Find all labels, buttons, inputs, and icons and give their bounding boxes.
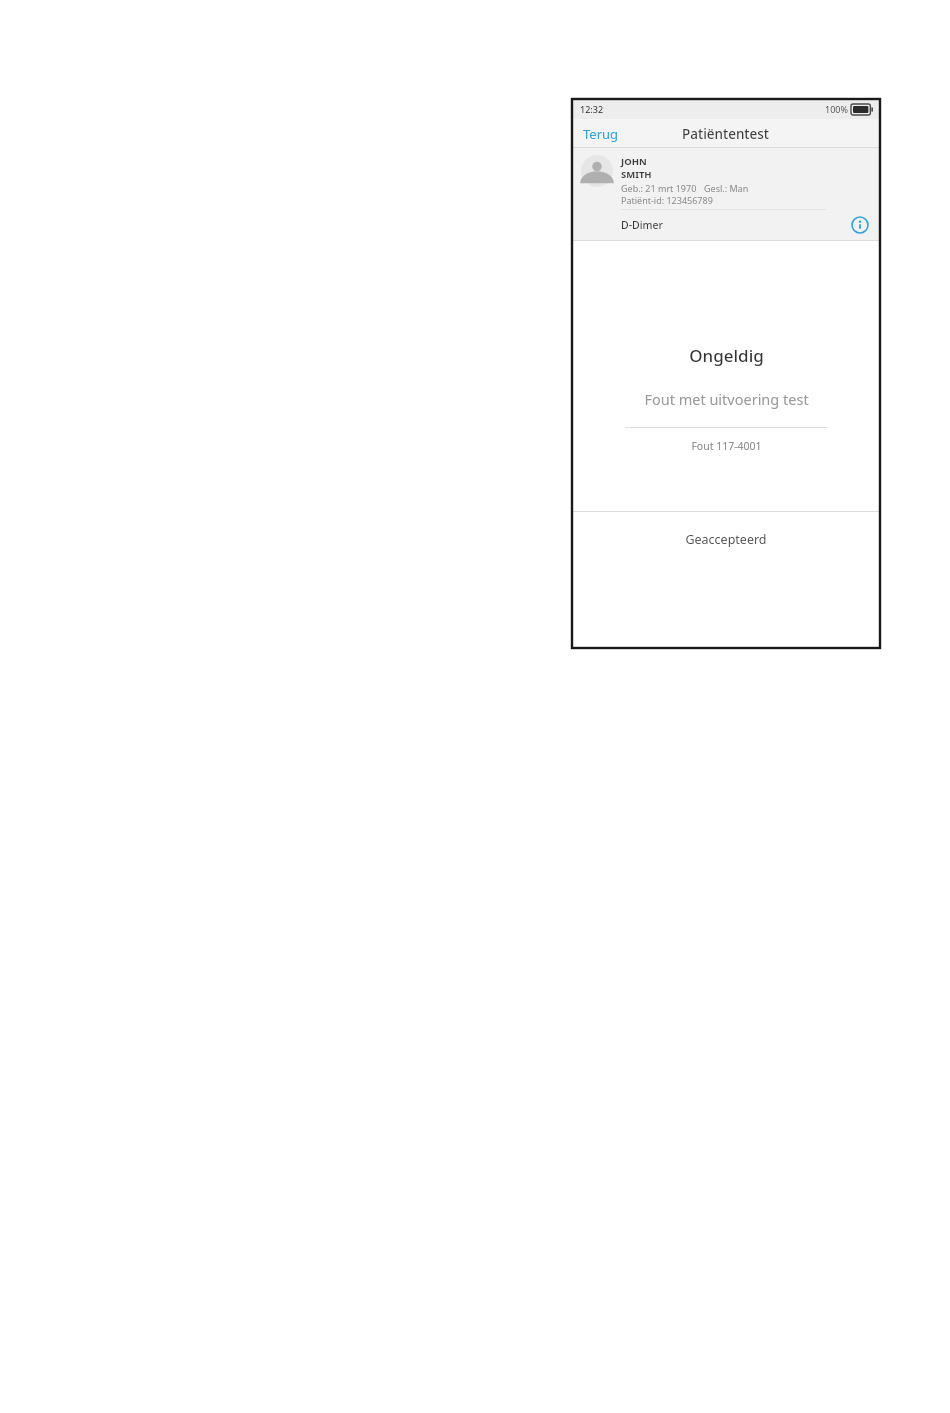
button[interactable]: Terug — [572, 121, 630, 147]
staticText: Patiënt-id: 123456789 — [621, 194, 713, 206]
staticText: 12:32 — [580, 103, 604, 115]
staticText: 100% — [825, 103, 848, 115]
button[interactable]: Geaccepteerd — [572, 512, 880, 648]
staticText: Fout met uitvoering test — [644, 389, 809, 409]
staticText: Gesl.: Man — [704, 182, 749, 194]
staticText: JOHN — [621, 155, 647, 168]
staticText: Terug — [583, 125, 619, 143]
staticText: Geaccepteerd — [685, 531, 767, 548]
staticText: Ongeldig — [689, 344, 764, 367]
staticText: Fout 117-4001 — [691, 439, 762, 453]
staticText: Patiëntentest — [682, 125, 770, 143]
staticText: D-Dimer — [621, 218, 663, 232]
button[interactable]: D-Dimer — [572, 210, 880, 240]
button[interactable]: Info — [851, 216, 869, 234]
staticText: SMITH — [621, 168, 652, 181]
staticText: Geb.: 21 mrt 1970 — [621, 182, 697, 194]
